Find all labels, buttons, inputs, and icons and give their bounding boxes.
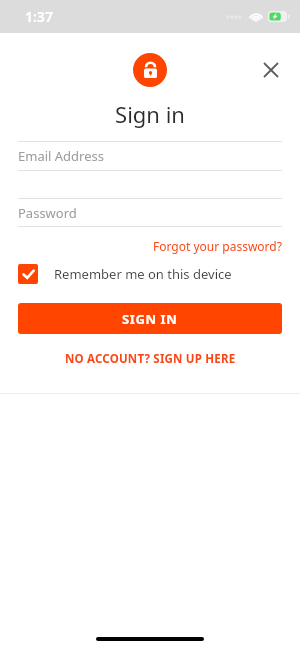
button[interactable]: Secure sign in (133, 53, 167, 87)
staticText: SIGN IN (122, 310, 178, 328)
staticText: NO ACCOUNT? SIGN UP HERE (65, 351, 236, 367)
button[interactable]: Forgot your password? (153, 238, 282, 254)
button[interactable]: Remember me on this device (18, 264, 282, 284)
staticText: Remember me on this device (54, 265, 232, 283)
button[interactable]: SIGN IN (18, 303, 282, 334)
button[interactable]: Password (18, 198, 282, 227)
staticText: Email Address (18, 147, 104, 165)
staticText: Forgot your password? (153, 238, 282, 254)
staticText: Password (18, 204, 77, 222)
button[interactable]: Email Address (18, 141, 282, 171)
staticText: 1:37 (25, 7, 53, 26)
button[interactable]: NO ACCOUNT? SIGN UP HERE (65, 351, 236, 367)
staticText: Sign in (0, 99, 300, 129)
button[interactable]: Close (256, 55, 286, 85)
